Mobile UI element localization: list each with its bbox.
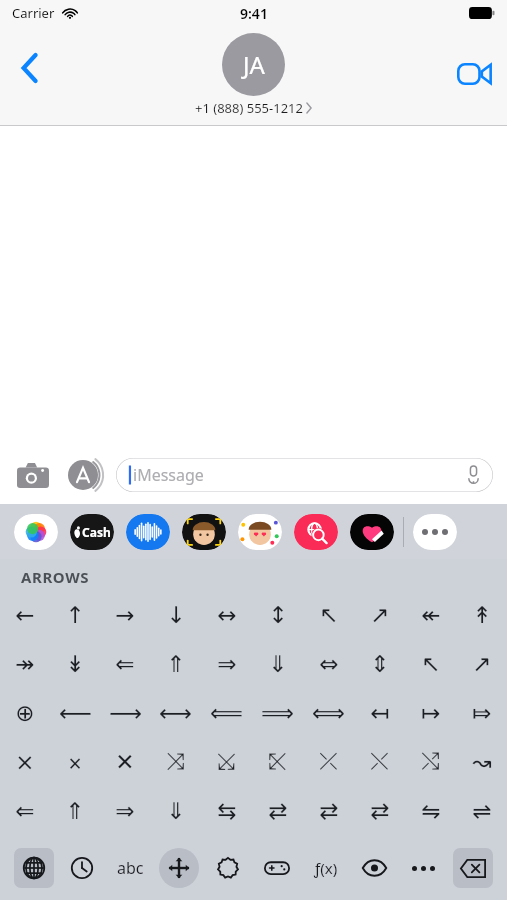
staticText: Cash <box>82 524 111 540</box>
staticText: iMessage <box>133 464 204 486</box>
button[interactable]: ↦ <box>405 689 456 738</box>
staticText: ⤬ <box>370 751 389 774</box>
staticText: ↡ <box>65 651 85 678</box>
button[interactable]: ↓ <box>150 591 201 640</box>
button[interactable]: ⇒ <box>100 787 150 836</box>
button[interactable]: Back <box>8 46 52 90</box>
button[interactable]: Arrows category <box>154 836 203 900</box>
button[interactable]: ↖ <box>303 591 354 640</box>
button[interactable]: Letters <box>106 836 154 900</box>
button[interactable]: More <box>399 836 448 900</box>
button[interactable]: Recently used <box>58 836 106 900</box>
button[interactable]: App <box>238 514 282 550</box>
button[interactable]: ⟹ <box>252 689 303 738</box>
button[interactable]: App <box>70 514 114 550</box>
button[interactable]: ⤭ <box>405 738 456 787</box>
button[interactable]: App <box>350 514 394 550</box>
button[interactable]: ⟵ <box>50 689 100 738</box>
button[interactable]: ⇆ <box>201 787 252 836</box>
button[interactable]: ⇄ <box>252 787 303 836</box>
button[interactable]: Delete <box>448 836 497 900</box>
button[interactable]: ⇐ <box>0 787 50 836</box>
button[interactable]: ↝ <box>456 738 507 787</box>
button[interactable]: ⊕ <box>0 689 50 738</box>
button[interactable]: ⟶ <box>100 689 150 738</box>
button[interactable]: × <box>50 738 100 787</box>
staticText: ↓ <box>166 602 186 629</box>
button[interactable]: App <box>413 514 457 550</box>
button[interactable]: ⟷ <box>150 689 201 738</box>
button[interactable]: FaceTime video call <box>451 51 497 97</box>
button[interactable]: ⤪ <box>252 738 303 787</box>
button[interactable]: → <box>100 591 150 640</box>
button[interactable]: ⇓ <box>150 787 201 836</box>
button[interactable]: ⇋ <box>405 787 456 836</box>
button[interactable]: ↞ <box>405 591 456 640</box>
button[interactable]: ↡ <box>50 640 100 689</box>
button[interactable]: App <box>126 514 170 550</box>
staticText: ⇔ <box>319 651 339 678</box>
button[interactable]: ⇔ <box>303 640 354 689</box>
staticText: ⟷ <box>159 700 192 727</box>
button[interactable]: ↠ <box>0 640 50 689</box>
button[interactable]: ← <box>0 591 50 640</box>
button[interactable]: ↕ <box>252 591 303 640</box>
button[interactable]: ↔ <box>201 591 252 640</box>
button[interactable]: ⤬ <box>354 738 405 787</box>
button[interactable]: ↗ <box>456 640 507 689</box>
staticText: ✕ <box>115 749 135 776</box>
button[interactable]: ⇄ <box>354 787 405 836</box>
staticText: ⤫ <box>319 751 338 774</box>
staticText: ↤ <box>370 700 390 727</box>
button[interactable]: Games <box>252 836 301 900</box>
staticText: ⤇ <box>472 700 492 727</box>
button[interactable]: ↑ <box>50 591 100 640</box>
button[interactable]: Math <box>301 836 350 900</box>
button[interactable]: App <box>294 514 338 550</box>
button[interactable]: ⤨ <box>150 738 201 787</box>
staticText: ⇓ <box>268 651 288 678</box>
button[interactable]: ⇌ <box>456 787 507 836</box>
button[interactable]: ↖ <box>405 640 456 689</box>
button[interactable]: ⇐ <box>100 640 150 689</box>
button[interactable]: ⇄ <box>303 787 354 836</box>
button[interactable]: ⟺ <box>303 689 354 738</box>
staticText: ⇑ <box>65 798 85 825</box>
staticText: ⇐ <box>15 798 35 825</box>
staticText: +1 (888) 555-1212 <box>195 99 303 117</box>
button[interactable]: Keyboard language <box>10 836 58 900</box>
staticText: ⇒ <box>217 651 237 678</box>
button[interactable]: iMessage <box>116 458 493 492</box>
button[interactable]: ⇑ <box>150 640 201 689</box>
staticText: JA <box>243 48 265 81</box>
button[interactable]: ⤫ <box>303 738 354 787</box>
button[interactable]: ↟ <box>456 591 507 640</box>
staticText: 9:41 <box>240 4 268 23</box>
button[interactable]: Accessibility <box>350 836 399 900</box>
button[interactable]: ⤇ <box>456 689 507 738</box>
staticText: → <box>115 602 135 629</box>
button[interactable]: ⨯ <box>0 738 50 787</box>
button[interactable]: ⟸ <box>201 689 252 738</box>
button[interactable]: ⤩ <box>201 738 252 787</box>
button[interactable]: ⇑ <box>50 787 100 836</box>
button[interactable]: ↤ <box>354 689 405 738</box>
button[interactable]: iMessage apps <box>65 455 105 495</box>
staticText: ⊕ <box>15 700 35 727</box>
button[interactable]: ⇕ <box>354 640 405 689</box>
button[interactable]: ⇒ <box>201 640 252 689</box>
button[interactable]: ✕ <box>100 738 150 787</box>
staticText: ↑ <box>65 602 85 629</box>
button[interactable]: App <box>182 514 226 550</box>
button[interactable]: Audio message <box>462 464 484 486</box>
button[interactable]: JA <box>195 33 312 117</box>
staticText: ↖ <box>319 602 339 629</box>
button[interactable]: App <box>14 514 58 550</box>
button[interactable]: Camera <box>14 456 52 494</box>
button[interactable]: ↗ <box>354 591 405 640</box>
button[interactable]: ⇓ <box>252 640 303 689</box>
staticText: ⤪ <box>268 751 287 774</box>
staticText: ↕ <box>268 602 288 629</box>
button[interactable]: Shapes <box>203 836 252 900</box>
staticText: ⇄ <box>268 798 288 825</box>
